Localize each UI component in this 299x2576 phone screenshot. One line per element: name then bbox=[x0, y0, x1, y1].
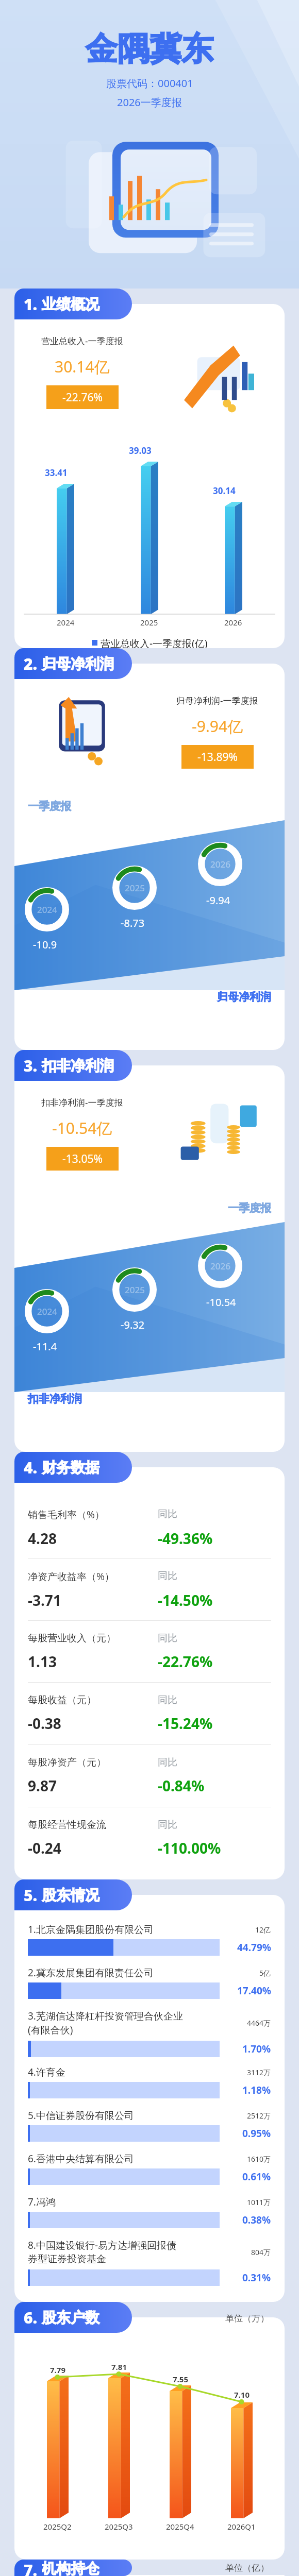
staticText: 2025 bbox=[125, 1284, 145, 1296]
button[interactable]: 2. bbox=[14, 648, 132, 679]
staticText: 股东户数 bbox=[42, 2309, 99, 2327]
button[interactable]: 1. bbox=[14, 289, 132, 319]
button[interactable]: 7.冯鸿 bbox=[28, 2195, 271, 2228]
staticText: 单位（万） bbox=[225, 2313, 269, 2324]
staticText: 2024 bbox=[57, 617, 75, 628]
staticText: 2.冀东发展集团有限责任公司 bbox=[28, 1966, 154, 1979]
staticText: 股票代码：000401 bbox=[106, 76, 193, 90]
staticText: 0.95% bbox=[242, 2127, 271, 2140]
staticText: 2024 bbox=[37, 904, 57, 916]
staticText: -9.94 bbox=[206, 893, 230, 907]
button[interactable]: 3. bbox=[14, 1050, 132, 1081]
staticText: 3. bbox=[24, 1055, 38, 1076]
button[interactable]: 每股收益（元） bbox=[28, 1683, 271, 1744]
staticText: 4464万 bbox=[247, 2018, 271, 2028]
staticText: 营业总收入-一季度报(亿) bbox=[101, 637, 208, 648]
staticText: 2025Q3 bbox=[105, 2521, 133, 2532]
staticText: 44.79% bbox=[237, 1941, 271, 1954]
button[interactable]: 5.中信证券股份有限公司 bbox=[28, 2109, 271, 2142]
staticText: 归母净利润-一季度报 bbox=[176, 694, 258, 706]
button[interactable]: 4.许育金 bbox=[28, 2065, 271, 2098]
staticText: 2026 bbox=[210, 858, 230, 870]
staticText: 一季度报 bbox=[28, 800, 71, 813]
staticText: 2026 bbox=[210, 1260, 230, 1272]
staticText: 每股收益（元） bbox=[28, 1694, 96, 1706]
button[interactable]: 6. bbox=[14, 2302, 132, 2333]
staticText: 7.10 bbox=[234, 2389, 250, 2400]
staticText: 1.18% bbox=[242, 2083, 271, 2097]
staticText: 2026Q1 bbox=[227, 2521, 256, 2532]
staticText: 同比 bbox=[158, 1508, 177, 1520]
button[interactable]: 销售毛利率（%） bbox=[28, 1497, 271, 1558]
staticText: 机构持仓 bbox=[42, 2560, 99, 2576]
staticText: 单位（亿） bbox=[225, 2563, 269, 2573]
staticText: -10.9 bbox=[33, 938, 57, 952]
staticText: -0.24 bbox=[28, 1838, 61, 1858]
staticText: 7. bbox=[24, 2560, 38, 2576]
button[interactable]: -13.05% bbox=[46, 1147, 119, 1171]
staticText: 3112万 bbox=[247, 2067, 271, 2077]
staticText: -9.32 bbox=[121, 1318, 145, 1332]
staticText: -110.00% bbox=[158, 1838, 221, 1858]
button[interactable]: 6.香港中央结算有限公司 bbox=[28, 2152, 271, 2185]
staticText: -10.54亿 bbox=[52, 1117, 112, 1139]
staticText: 2512万 bbox=[247, 2111, 271, 2121]
button[interactable]: 2.冀东发展集团有限责任公司 bbox=[28, 1966, 271, 1999]
button[interactable]: 每股经营性现金流 bbox=[28, 1807, 271, 1869]
staticText: 6.香港中央结算有限公司 bbox=[28, 2152, 134, 2165]
staticText: 4. bbox=[24, 1457, 38, 1478]
button[interactable]: 1.北京金隅集团股份有限公司 bbox=[28, 1923, 271, 1956]
staticText: 4.许育金 bbox=[28, 2065, 65, 2079]
staticText: -0.38 bbox=[28, 1714, 61, 1733]
staticText: 同比 bbox=[158, 1632, 177, 1645]
button[interactable]: 8.中国建设银行-易方达增强回报债 券型证券投资基金 bbox=[28, 2239, 271, 2286]
button[interactable]: 3.芜湖信达降杠杆投资管理合伙企业 (有限合伙) bbox=[28, 2009, 271, 2057]
button[interactable]: 净资产收益率（%） bbox=[28, 1559, 271, 1620]
staticText: 金隅冀东 bbox=[86, 29, 213, 69]
staticText: 营业总收入-一季度报 bbox=[41, 335, 123, 347]
button[interactable]: 每股营业收入（元） bbox=[28, 1621, 271, 1682]
staticText: 净资产收益率（%） bbox=[28, 1570, 114, 1583]
staticText: 扣非净利润-一季度报 bbox=[41, 1096, 123, 1108]
staticText: 5.中信证券股份有限公司 bbox=[28, 2109, 134, 2122]
staticText: 1.70% bbox=[242, 2042, 271, 2056]
staticText: 1011万 bbox=[247, 2197, 271, 2207]
staticText: 6. bbox=[24, 2307, 38, 2328]
staticText: 2025 bbox=[125, 882, 145, 894]
staticText: 销售毛利率（%） bbox=[28, 1508, 105, 1521]
staticText: 5亿 bbox=[259, 1968, 271, 1978]
staticText: 4.28 bbox=[28, 1529, 57, 1548]
staticText: 8.中国建设银行-易方达增强回报债 券型证券投资基金 bbox=[28, 2239, 177, 2265]
staticText: 业绩概况 bbox=[42, 295, 99, 313]
staticText: 同比 bbox=[158, 1756, 177, 1769]
staticText: -22.76% bbox=[62, 390, 103, 405]
staticText: 2024 bbox=[37, 1306, 57, 1317]
staticText: 股东情况 bbox=[42, 1886, 99, 1904]
staticText: 一季度报 bbox=[228, 1201, 271, 1215]
staticText: -10.54 bbox=[206, 1295, 236, 1309]
staticText: 7.冯鸿 bbox=[28, 2195, 56, 2209]
button[interactable]: -13.89% bbox=[181, 745, 254, 769]
staticText: 2025Q2 bbox=[43, 2521, 72, 2532]
staticText: 2. bbox=[24, 653, 38, 674]
button[interactable]: 4. bbox=[14, 1452, 132, 1483]
staticText: 2025Q4 bbox=[166, 2521, 194, 2532]
button[interactable]: 每股净资产（元） bbox=[28, 1745, 271, 1807]
staticText: -13.05% bbox=[62, 1151, 103, 1166]
staticText: 每股经营性现金流 bbox=[28, 1819, 106, 1831]
staticText: -13.89% bbox=[197, 750, 238, 765]
staticText: 804万 bbox=[251, 2247, 271, 2257]
staticText: 1.北京金隅集团股份有限公司 bbox=[28, 1923, 154, 1936]
staticText: 归母净利润 bbox=[42, 655, 114, 673]
staticText: -14.50% bbox=[158, 1590, 213, 1610]
button[interactable]: 7. bbox=[14, 2560, 132, 2576]
staticText: 2026 bbox=[224, 617, 242, 628]
staticText: 财务数据 bbox=[42, 1459, 99, 1477]
button[interactable]: -22.76% bbox=[46, 385, 119, 409]
staticText: -22.76% bbox=[158, 1652, 213, 1671]
staticText: 30.14 bbox=[213, 485, 236, 497]
button[interactable]: 5. bbox=[14, 1879, 132, 1910]
staticText: -49.36% bbox=[158, 1529, 213, 1548]
staticText: -9.94亿 bbox=[192, 716, 243, 737]
staticText: 30.14亿 bbox=[55, 356, 110, 377]
